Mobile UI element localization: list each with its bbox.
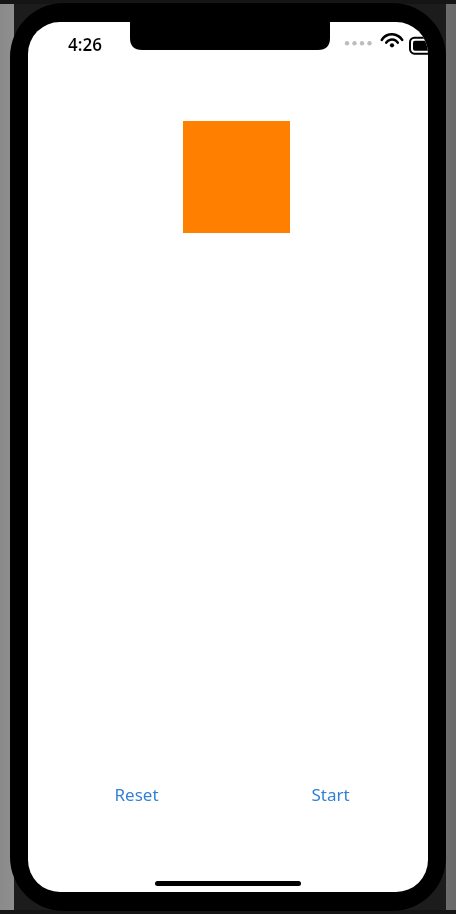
staticText: Reset — [114, 783, 159, 806]
staticText: 4:26 — [68, 33, 102, 56]
staticText: Start — [311, 783, 350, 806]
button[interactable]: Start — [297, 775, 364, 814]
other: Home indicator — [155, 881, 301, 886]
button[interactable]: Reset — [100, 775, 173, 814]
